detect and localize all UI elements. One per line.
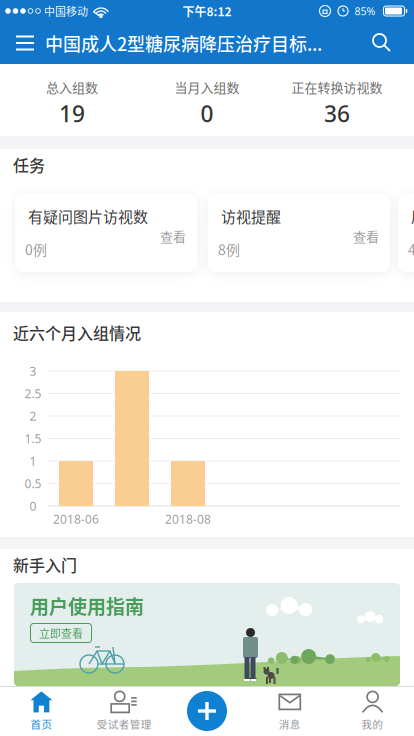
staticText: 我的 bbox=[362, 716, 384, 732]
staticText: 2 bbox=[29, 408, 36, 424]
staticText: 中国移动 bbox=[44, 3, 88, 19]
staticText: 受试者管理 bbox=[97, 716, 152, 732]
staticText: 0例 bbox=[25, 239, 47, 259]
staticText: 3 bbox=[29, 363, 36, 379]
staticText: 查看 bbox=[353, 227, 379, 245]
staticText: 访视提醒 bbox=[221, 205, 281, 227]
staticText: 36 bbox=[324, 98, 350, 128]
button[interactable]: 用户使用指南 bbox=[14, 583, 400, 686]
staticText: 下午8:12 bbox=[182, 2, 231, 20]
staticText: 质疑数 bbox=[411, 205, 414, 227]
staticText: 有疑问图片访视数 bbox=[28, 205, 148, 227]
button[interactable]: 菜单 bbox=[16, 35, 34, 50]
staticText: 0 bbox=[29, 498, 36, 514]
button[interactable]: 添加 bbox=[166, 691, 248, 731]
staticText: 2018-06 bbox=[53, 511, 99, 527]
staticText: 2.5 bbox=[24, 385, 41, 401]
staticText: 4例 bbox=[408, 239, 414, 259]
staticText: 用户使用指南 bbox=[30, 592, 144, 619]
staticText: 1 bbox=[29, 453, 36, 469]
staticText: 正在转换访视数 bbox=[291, 77, 382, 96]
button[interactable]: 访视提醒 bbox=[208, 194, 390, 272]
staticText: 当月入组数 bbox=[174, 77, 239, 96]
staticText: 0.5 bbox=[24, 475, 41, 491]
button[interactable]: 消息 bbox=[248, 690, 331, 732]
button[interactable]: 质疑数 bbox=[398, 194, 414, 272]
staticText: 首页 bbox=[30, 716, 52, 732]
button[interactable]: 我的 bbox=[331, 690, 414, 732]
staticText: 近六个月入组情况 bbox=[13, 321, 141, 344]
button[interactable]: 首页 bbox=[0, 690, 83, 732]
staticText: 查看 bbox=[160, 227, 186, 245]
staticText: 1.5 bbox=[24, 430, 41, 446]
staticText: 8例 bbox=[218, 239, 240, 259]
staticText: 0 bbox=[200, 98, 213, 128]
staticText: 消息 bbox=[279, 716, 301, 732]
staticText: 新手入门 bbox=[13, 553, 77, 576]
staticText: 19 bbox=[59, 98, 85, 128]
staticText: 立即查看 bbox=[39, 625, 83, 641]
staticText: 总入组数 bbox=[46, 77, 98, 96]
staticText: 任务 bbox=[13, 153, 45, 176]
button[interactable]: 搜索 bbox=[373, 34, 391, 52]
button[interactable]: 受试者管理 bbox=[83, 690, 166, 732]
staticText: 中国成人2型糖尿病降压治疗目标... bbox=[45, 30, 322, 56]
staticText: 2018-08 bbox=[165, 511, 211, 527]
staticText: 85% bbox=[354, 4, 375, 18]
button[interactable]: 有疑问图片访视数 bbox=[15, 194, 197, 272]
